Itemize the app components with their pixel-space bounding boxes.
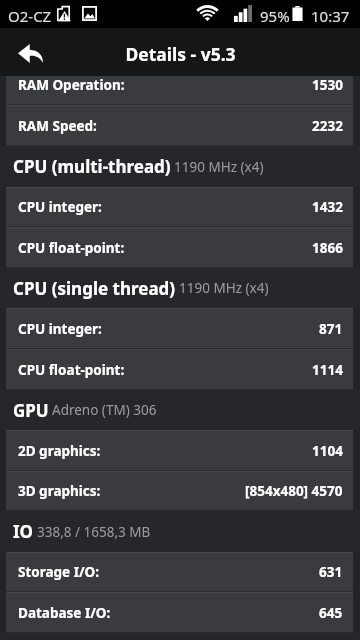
staticText: 871 [319,320,343,338]
staticText: RAM Speed: [18,117,97,135]
staticText: 1190 MHz (x4) [179,279,269,297]
staticText: Database I/O: [18,604,111,622]
staticText: 2232 [312,117,343,135]
staticText: 1190 MHz (x4) [174,158,264,176]
button[interactable]: CPU float-point: [6,349,353,390]
staticText: 338,8 / 1658,3 MB [37,523,151,541]
staticText: 2D graphics: [18,442,101,460]
staticText: 3D graphics: [18,482,101,500]
staticText: CPU integer: [18,198,102,216]
staticText: 1114 [312,361,343,379]
staticText: RAM Operation: [18,76,125,94]
staticText: IO [13,520,34,543]
staticText: CPU (multi-thread) [13,155,171,178]
staticText: Details - v5.3 [125,42,236,66]
button[interactable]: 2D graphics: [6,430,353,471]
button[interactable]: RAM Operation: [6,76,353,105]
button[interactable]: RAM Speed: [6,105,353,146]
staticText: Storage I/O: [18,563,100,581]
button[interactable]: Database I/O: [6,592,353,633]
button[interactable]: Back [18,44,43,63]
button[interactable]: CPU integer: [6,308,353,349]
staticText: GPU [13,399,49,422]
button[interactable]: Storage I/O: [6,552,353,592]
staticText: [854x480] 4570 [245,482,343,500]
staticText: CPU float-point: [18,239,125,257]
staticText: 95% [260,6,290,26]
staticText: 10:37 [311,6,350,26]
button[interactable]: CPU float-point: [6,227,353,268]
button[interactable]: 3D graphics: [6,471,353,511]
staticText: CPU (single thread) [13,277,176,300]
staticText: 631 [319,563,343,581]
staticText: 645 [319,604,343,622]
staticText: O2-CZ [8,6,52,26]
staticText: 1432 [312,198,343,216]
staticText: CPU integer: [18,320,102,338]
button[interactable]: CPU integer: [6,187,353,227]
staticText: 1530 [312,76,343,94]
staticText: 1866 [312,239,343,257]
staticText: CPU float-point: [18,361,125,379]
staticText: 1104 [312,442,343,460]
staticText: Adreno (TM) 306 [52,401,157,419]
